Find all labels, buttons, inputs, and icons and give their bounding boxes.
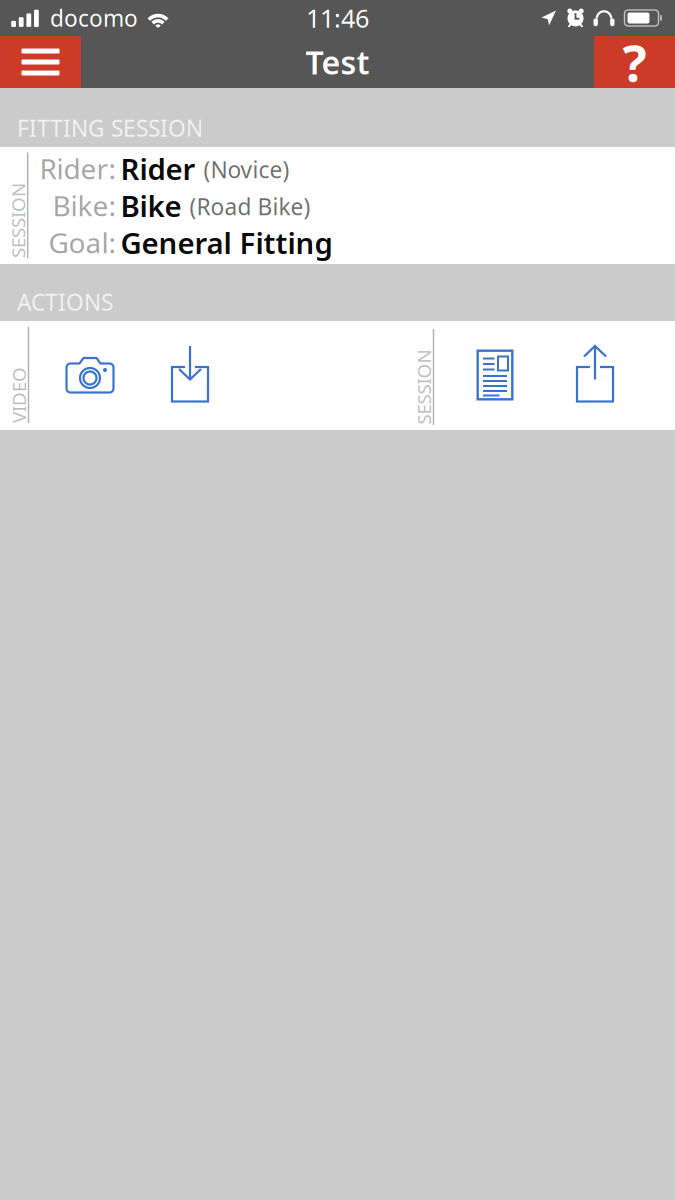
staticText: VIDEO [0, 383, 47, 407]
staticText: General Fitting [120, 223, 332, 262]
staticText: FITTING SESSION [17, 113, 203, 143]
staticText: docomo [50, 3, 138, 33]
staticText: Rider [120, 149, 195, 188]
button[interactable]: Help [594, 36, 675, 88]
staticText: SESSION [386, 375, 461, 399]
staticText: 11:46 [306, 1, 369, 35]
staticText: Bike: [52, 187, 116, 224]
button[interactable]: Import video [143, 324, 237, 424]
staticText: ACTIONS [17, 287, 113, 317]
staticText: ? [622, 28, 646, 96]
staticText: Goal: [48, 224, 116, 261]
staticText: (Road Bike) [189, 191, 310, 221]
staticText: SESSION [0, 208, 55, 233]
staticText: Bike [120, 186, 181, 225]
staticText: Test [305, 41, 369, 83]
staticText: Rider: [39, 150, 116, 187]
staticText: (Novice) [203, 154, 289, 184]
button[interactable]: Report [450, 325, 540, 425]
button[interactable]: Record video [43, 325, 137, 425]
button[interactable]: Share [550, 324, 640, 424]
button[interactable]: Menu [0, 36, 81, 88]
